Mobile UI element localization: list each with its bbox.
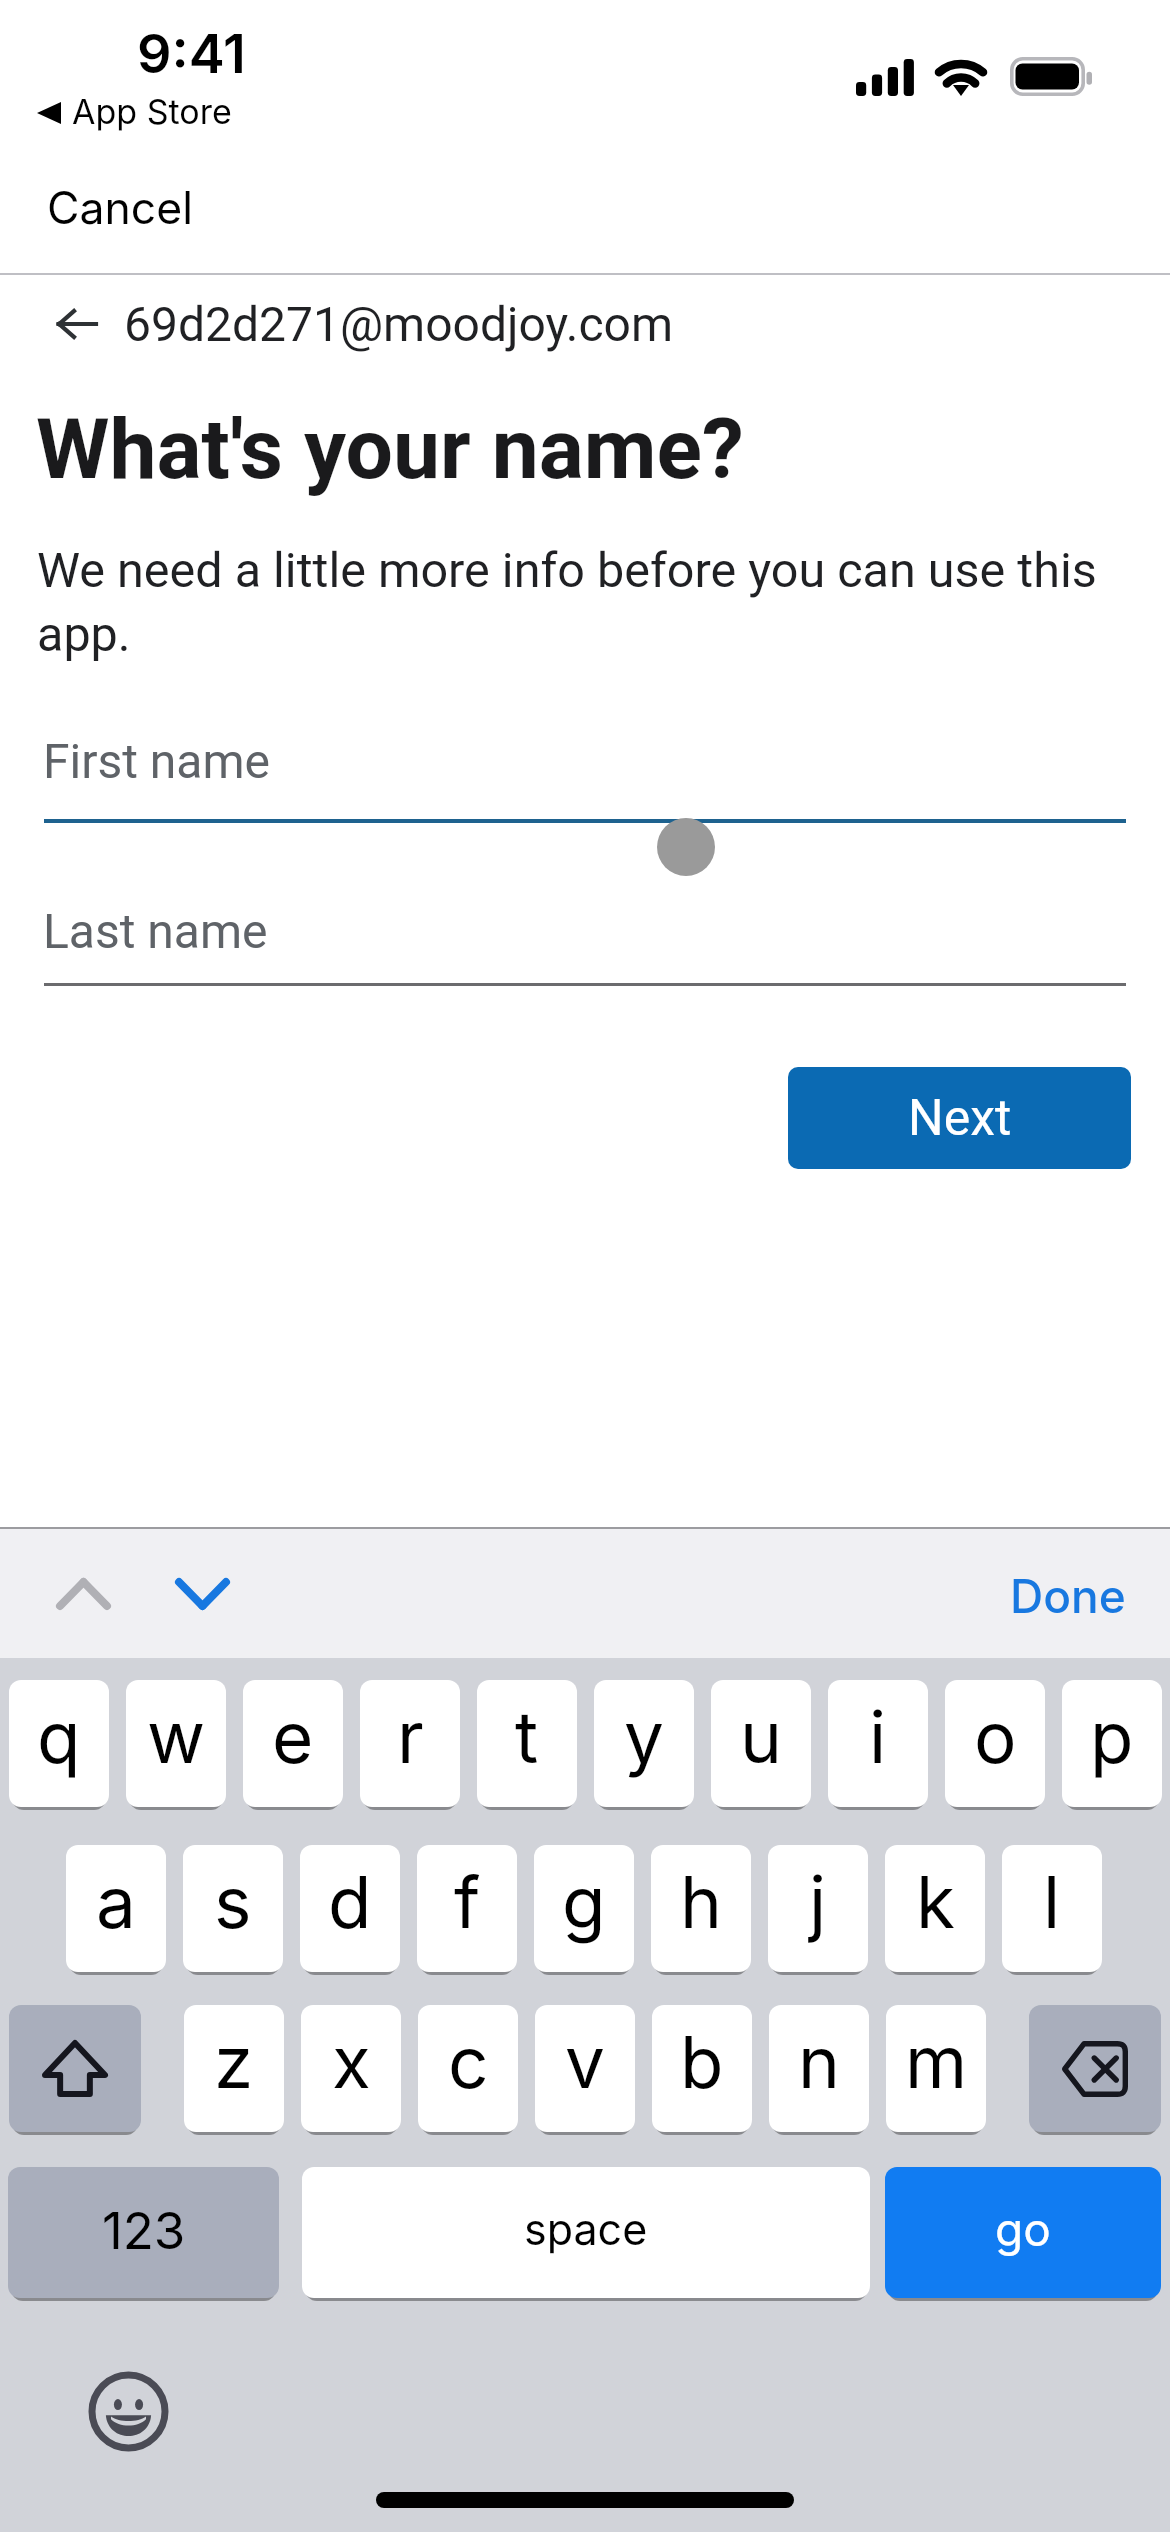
button[interactable]: n [769,2005,869,2132]
button[interactable]: q [9,1680,109,1807]
button[interactable]: l [1002,1845,1102,1972]
staticText: a [96,1859,136,1945]
button[interactable]: c [418,2005,518,2132]
staticText: i [869,1694,887,1780]
button[interactable]: y [594,1680,694,1807]
button[interactable]: v [535,2005,635,2132]
staticText: c [448,2019,489,2105]
staticText: d [328,1859,372,1945]
button[interactable]: x [301,2005,401,2132]
staticText: b [680,2019,724,2105]
button[interactable]: Cancel [16,165,224,251]
button[interactable]: z [184,2005,284,2132]
staticText: m [905,2019,968,2105]
staticText: e [272,1694,314,1780]
button[interactable]: Backspace [1029,2005,1161,2132]
staticText: First name [43,733,271,789]
button[interactable]: space [302,2167,870,2298]
button[interactable]: e [243,1680,343,1807]
staticText: We need a little more info before you ca… [37,542,1127,663]
button[interactable]: b [652,2005,752,2132]
button[interactable]: Last name [44,892,1126,986]
button[interactable]: First name [44,722,1126,823]
staticText: p [1090,1694,1134,1780]
staticText: j [809,1859,827,1945]
staticText: n [798,2019,840,2105]
button[interactable]: 123 [8,2167,279,2298]
button[interactable]: p [1062,1680,1162,1807]
button[interactable]: a [66,1845,166,1972]
button[interactable]: g [534,1845,634,1972]
button[interactable]: App Store [30,92,242,133]
staticText: y [624,1694,664,1780]
button[interactable]: Shift [9,2005,141,2132]
staticText: 9:41 [137,21,246,86]
staticText: z [214,2019,254,2105]
staticText: go [995,2201,1051,2257]
staticText: t [515,1694,539,1780]
staticText: r [397,1694,424,1780]
staticText: 69d2d271@moodjoy.com [124,296,673,352]
staticText: f [454,1859,481,1945]
staticText: q [37,1694,81,1780]
staticText: Cancel [47,181,193,235]
button[interactable]: f [417,1845,517,1972]
button[interactable]: w [126,1680,226,1807]
button[interactable]: Emoji keyboard [78,2361,178,2461]
staticText: App Store [72,91,232,132]
staticText: u [740,1694,782,1780]
button[interactable]: go [885,2167,1161,2298]
button[interactable]: t [477,1680,577,1807]
staticText: k [916,1859,955,1945]
button[interactable]: r [360,1680,460,1807]
staticText: v [565,2019,605,2105]
staticText: 123 [102,2200,186,2262]
button[interactable]: Done [990,1558,1146,1634]
staticText: Next [908,1089,1012,1148]
staticText: What's your name? [36,400,744,498]
staticText: l [1043,1859,1061,1945]
button[interactable]: Previous field [36,1559,130,1629]
button[interactable]: o [945,1680,1045,1807]
staticText: h [680,1859,722,1945]
button[interactable]: m [886,2005,986,2132]
button[interactable]: k [885,1845,985,1972]
staticText: w [147,1694,206,1780]
button[interactable]: Next [788,1067,1131,1169]
button[interactable]: 69d2d271@moodjoy.com [47,296,687,352]
staticText: space [524,2203,648,2255]
button[interactable]: Next field [155,1559,249,1629]
staticText: Done [1010,1568,1126,1624]
staticText: x [332,2019,371,2105]
button[interactable]: s [183,1845,283,1972]
button[interactable]: d [300,1845,400,1972]
button[interactable]: j [768,1845,868,1972]
staticText: Last name [43,903,268,959]
button[interactable]: h [651,1845,751,1972]
staticText: g [562,1859,606,1945]
staticText: s [214,1859,252,1945]
button[interactable]: i [828,1680,928,1807]
staticText: o [974,1694,1017,1780]
button[interactable]: u [711,1680,811,1807]
